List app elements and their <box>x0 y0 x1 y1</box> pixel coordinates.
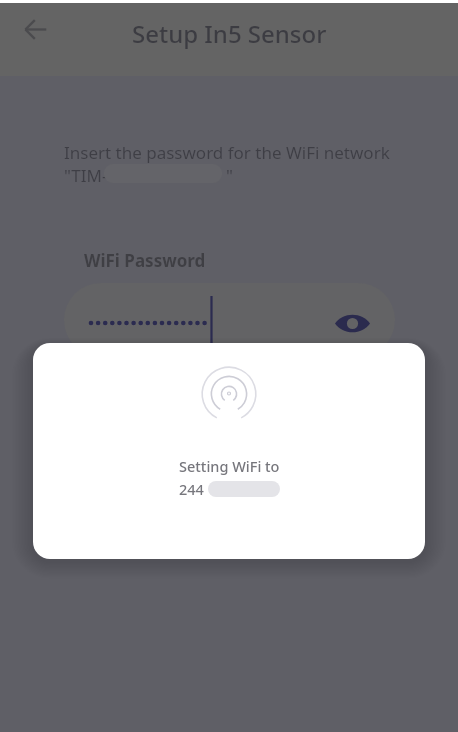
staticText: "TIM- <box>64 164 108 187</box>
staticText: Insert the password for the WiFi network <box>64 141 390 164</box>
staticText: " <box>226 164 233 187</box>
staticText: Setup In5 Sensor <box>132 17 327 50</box>
button[interactable]: Show password <box>330 301 375 346</box>
button[interactable]: Show password <box>64 283 395 357</box>
button[interactable]: Back <box>13 7 57 51</box>
staticText: 244 <box>179 479 204 499</box>
staticText: WiFi Password <box>84 249 206 272</box>
staticText: Setting WiFi to <box>179 456 280 476</box>
